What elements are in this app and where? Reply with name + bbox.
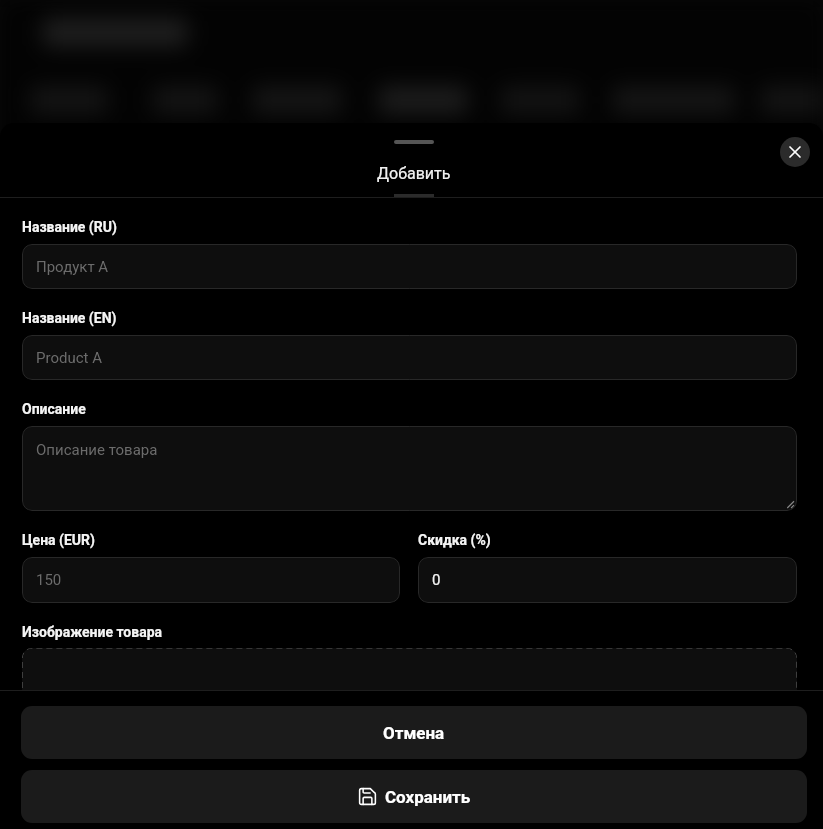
staticText: Изображение товара xyxy=(22,624,163,640)
staticText: 0 xyxy=(432,571,441,589)
button[interactable]: Product A xyxy=(22,335,797,380)
button[interactable]: Отмена xyxy=(21,706,807,759)
staticText: Product A xyxy=(36,349,102,367)
staticText: Отмена xyxy=(383,723,445,743)
staticText: 150 xyxy=(36,571,62,589)
button[interactable]: 0 xyxy=(418,557,797,603)
staticText: Описание товара xyxy=(36,441,158,459)
button[interactable]: Сохранить xyxy=(21,770,807,823)
staticText: Сохранить xyxy=(385,787,471,807)
staticText: Продукт А xyxy=(36,258,109,276)
button[interactable] xyxy=(22,648,797,690)
staticText: Название (RU) xyxy=(22,219,117,235)
staticText: Добавить xyxy=(377,164,451,183)
button[interactable]: 150 xyxy=(22,557,400,603)
button[interactable]: Описание товара xyxy=(22,426,797,511)
staticText: Цена (EUR) xyxy=(22,532,95,548)
staticText: Название (EN) xyxy=(22,310,117,326)
staticText: Скидка (%) xyxy=(418,532,491,548)
staticText: Описание xyxy=(22,401,86,417)
button[interactable]: Закрыть xyxy=(780,137,810,167)
button[interactable]: Продукт А xyxy=(22,244,797,289)
